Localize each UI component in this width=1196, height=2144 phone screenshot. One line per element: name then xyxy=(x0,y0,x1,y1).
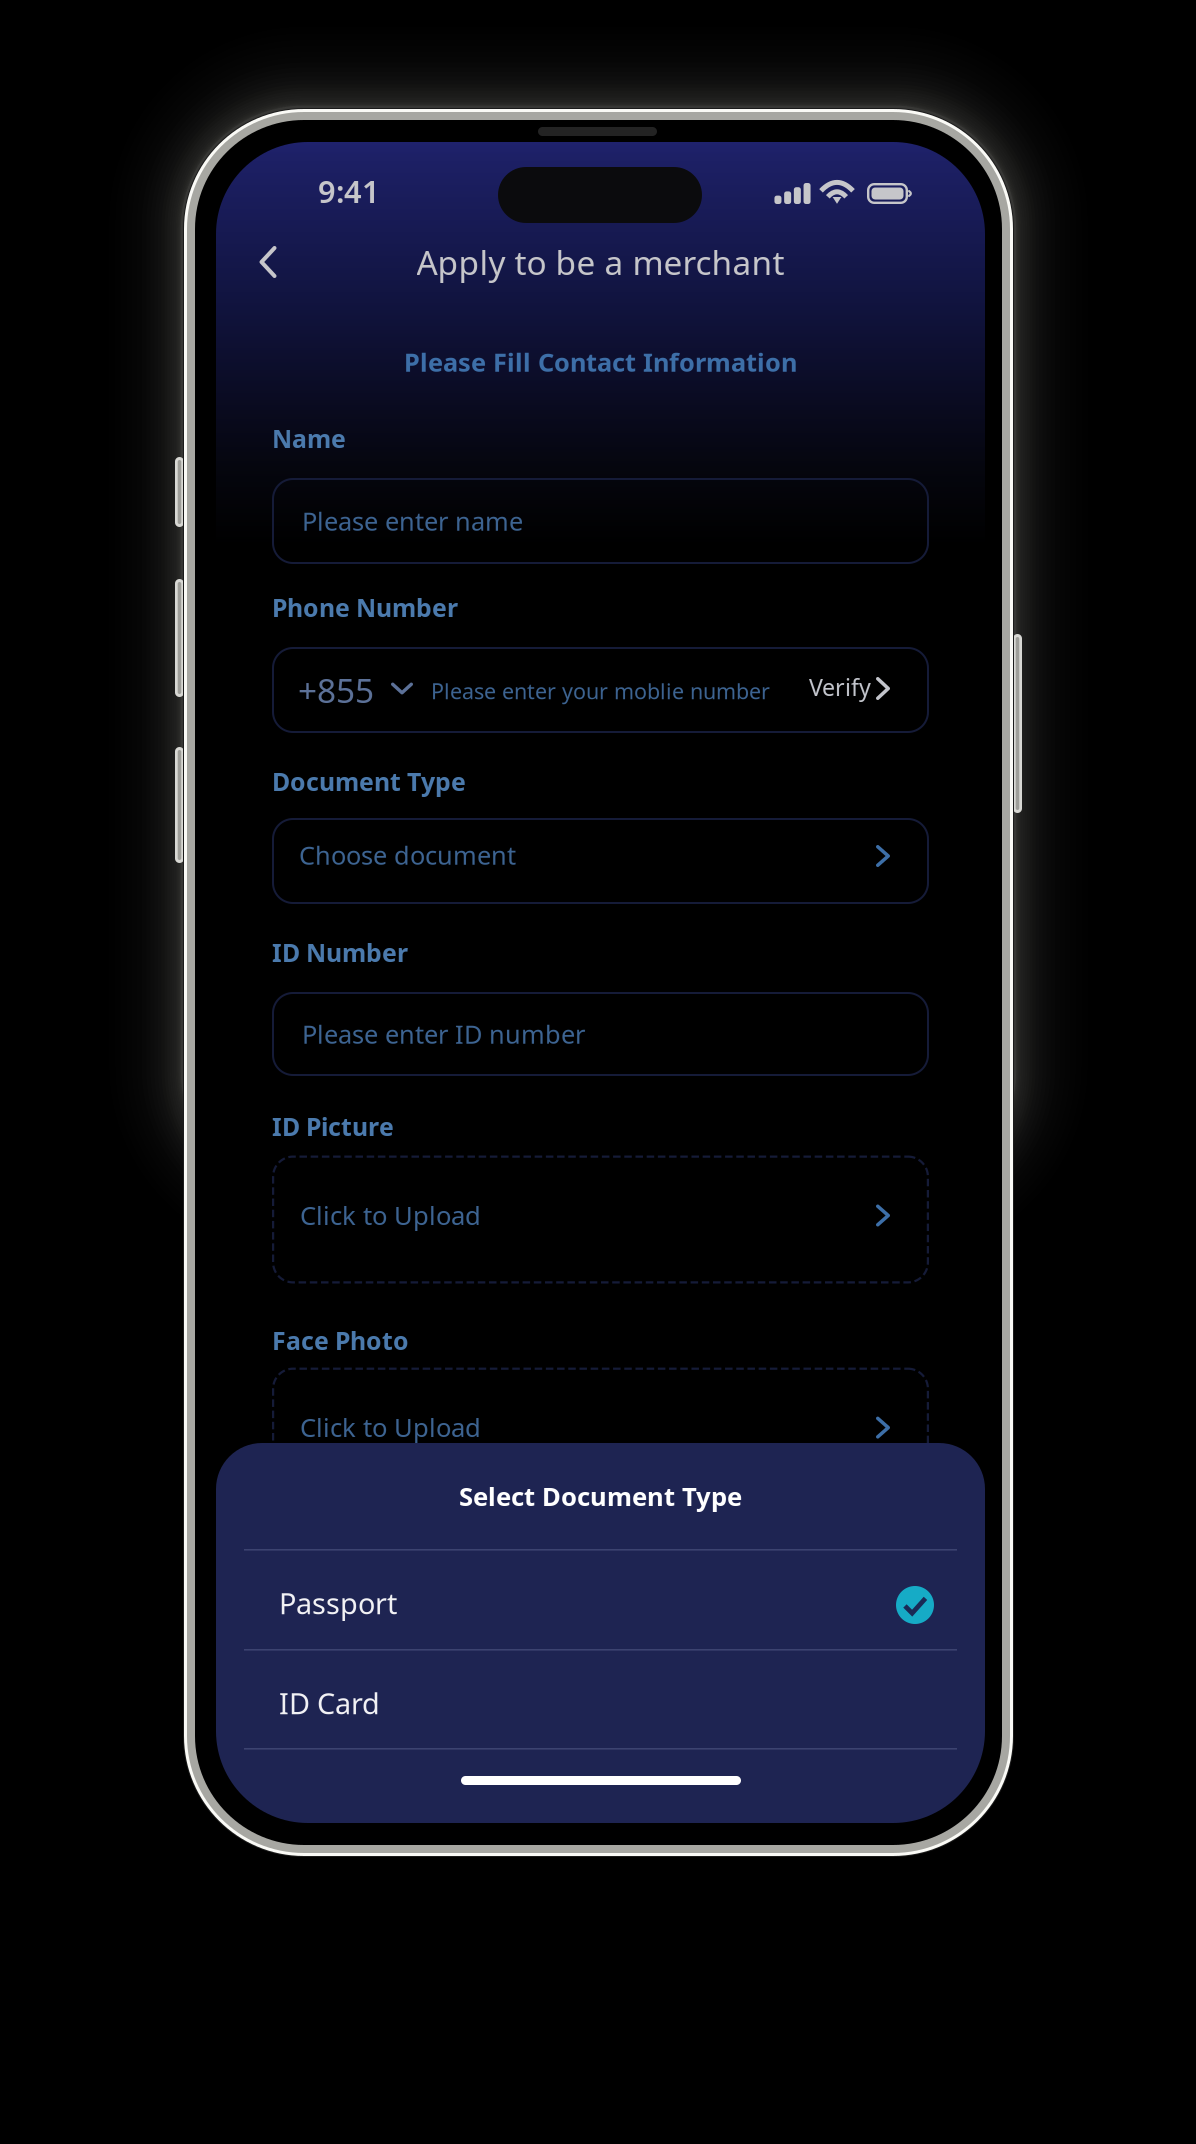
staticText: Please enter your moblie number xyxy=(431,676,770,706)
staticText: Document Type xyxy=(272,765,466,798)
button[interactable]: Choose document xyxy=(272,818,929,904)
staticText: Choose document xyxy=(299,838,516,872)
staticText: ID Card xyxy=(279,1683,380,1723)
staticText: Passport xyxy=(279,1583,397,1623)
staticText: ID Number xyxy=(272,936,408,969)
staticText: Verify xyxy=(809,671,871,703)
staticText: Click to Upload xyxy=(300,1410,481,1445)
staticText: +855 xyxy=(298,667,374,713)
button[interactable]: Click to Upload xyxy=(272,1368,929,1496)
button[interactable]: Click to Upload xyxy=(272,1155,929,1283)
staticText: 9:41 xyxy=(318,170,380,212)
staticText: Name xyxy=(272,422,346,455)
staticText: Click to Upload xyxy=(300,1198,481,1232)
staticText: Please enter ID number xyxy=(302,1017,585,1051)
staticText: Phone Number xyxy=(272,591,458,624)
staticText: Please enter name xyxy=(302,504,523,538)
staticText: Apply to be a merchant xyxy=(416,239,784,285)
staticText: Please Fill Contact Information xyxy=(404,345,797,379)
button[interactable]: ID Card xyxy=(216,1649,985,1748)
staticText: Select Document Type xyxy=(459,1479,742,1513)
staticText: ID Picture xyxy=(272,1110,394,1143)
staticText: Face Photo xyxy=(272,1324,409,1357)
button[interactable]: Passport xyxy=(216,1549,985,1649)
button[interactable]: Back xyxy=(232,229,304,295)
button[interactable]: Verify xyxy=(801,660,901,716)
